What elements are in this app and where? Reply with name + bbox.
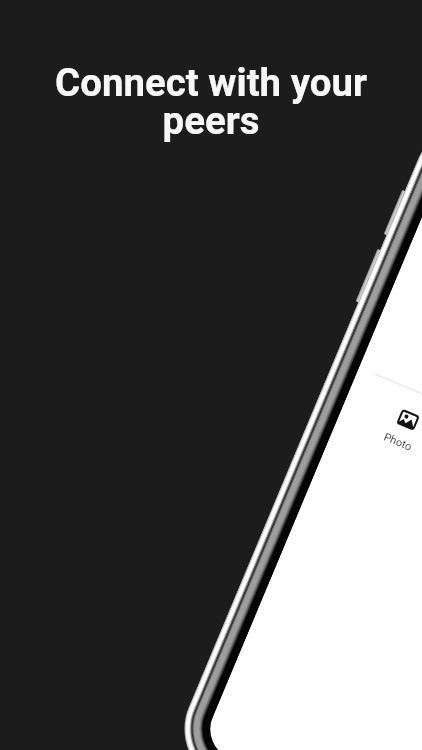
button[interactable]: Photo: [377, 404, 422, 456]
staticText: Photo: [382, 430, 414, 454]
staticText: Connect with your peers: [28, 60, 394, 143]
